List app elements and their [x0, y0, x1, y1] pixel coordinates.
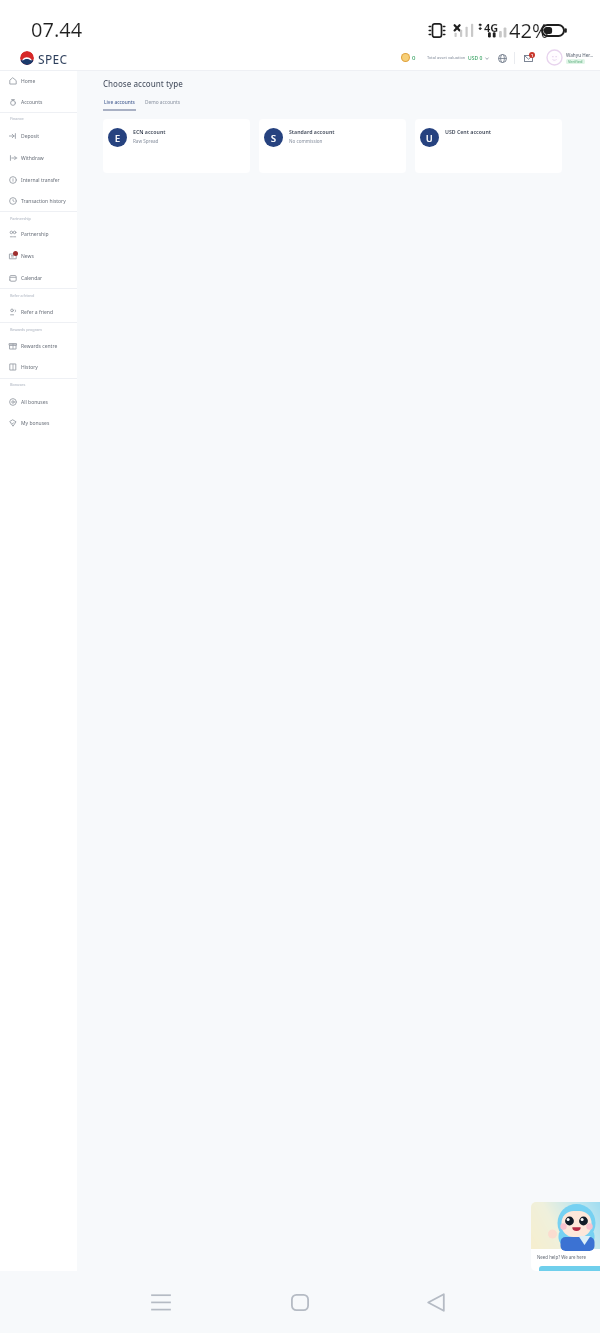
staticText: News: [21, 253, 34, 260]
staticText: Rewards centre: [21, 343, 58, 350]
staticText: Partnership: [10, 216, 31, 221]
staticText: History: [21, 364, 38, 371]
button[interactable]: Refer a friend: [0, 303, 77, 321]
staticText: Partnership: [21, 231, 49, 238]
staticText: Calendar: [21, 275, 43, 282]
button[interactable]: Home: [276, 1278, 324, 1326]
button[interactable]: USD 0: [468, 55, 489, 62]
button[interactable]: Coins: [401, 53, 416, 62]
button[interactable]: Live accounts: [103, 99, 136, 111]
staticText: Home: [21, 78, 36, 85]
staticText: Finance: [10, 116, 24, 121]
staticText: Transaction history: [21, 198, 66, 205]
staticText: 1: [531, 53, 534, 58]
staticText: Refer a friend: [10, 293, 35, 298]
staticText: Withdraw: [21, 155, 44, 162]
staticText: S: [271, 132, 276, 144]
button[interactable]: Home: [0, 72, 77, 90]
button[interactable]: SPEC logo: [20, 51, 34, 65]
staticText: Standard account: [289, 128, 335, 135]
button[interactable]: All bonuses: [0, 393, 77, 411]
staticText: U: [426, 132, 433, 144]
button[interactable]: Withdraw: [0, 149, 77, 167]
staticText: Live accounts: [104, 99, 135, 106]
staticText: Rewards program: [10, 327, 42, 332]
button[interactable]: S: [259, 119, 406, 173]
button[interactable]: Language: [498, 54, 507, 63]
button[interactable]: E: [103, 119, 250, 173]
button[interactable]: Back: [412, 1278, 460, 1326]
staticText: All bonuses: [21, 399, 48, 406]
staticText: Wahyu Her...: [566, 52, 594, 58]
staticText: Need help? We are here: [537, 1254, 587, 1260]
staticText: E: [115, 132, 121, 144]
staticText: Internal transfer: [21, 177, 60, 184]
staticText: USD Cent account: [445, 128, 492, 135]
button[interactable]: Rewards centre: [0, 337, 77, 355]
staticText: Verified: [568, 59, 583, 64]
staticText: USD 0: [468, 55, 483, 62]
staticText: Accounts: [21, 99, 43, 106]
staticText: 0: [412, 54, 416, 62]
button[interactable]: Deposit: [0, 127, 77, 145]
button[interactable]: News: [0, 247, 77, 265]
staticText: Demo accounts: [145, 99, 180, 106]
button[interactable]: My bonuses: [0, 414, 77, 432]
staticText: Total asset valuation: [427, 55, 466, 60]
button[interactable]: Chat support: [531, 1202, 600, 1271]
button[interactable]: Recent apps: [137, 1278, 185, 1326]
button[interactable]: Internal transfer: [0, 171, 77, 189]
button[interactable]: Calendar: [0, 269, 77, 287]
button[interactable]: History: [0, 358, 77, 376]
staticText: My bonuses: [21, 420, 50, 427]
button[interactable]: U: [415, 119, 562, 173]
staticText: Choose account type: [103, 78, 183, 89]
staticText: Deposit: [21, 133, 40, 140]
button[interactable]: Demo accounts: [145, 99, 180, 106]
button[interactable]: Accounts: [0, 93, 77, 111]
staticText: Bonuses: [10, 382, 26, 387]
button[interactable]: Wahyu Her...: [547, 50, 594, 65]
staticText: 07.44: [31, 16, 83, 43]
staticText: SPEC: [38, 51, 68, 67]
button[interactable]: Partnership: [0, 225, 77, 243]
staticText: Raw Spread: [133, 138, 159, 144]
button[interactable]: Messages: [524, 53, 535, 64]
staticText: No commission: [289, 138, 323, 144]
staticText: 4G: [484, 20, 499, 35]
staticText: 42%: [509, 17, 549, 44]
staticText: Refer a friend: [21, 309, 54, 316]
staticText: ECN account: [133, 128, 166, 135]
button[interactable]: Transaction history: [0, 192, 77, 210]
